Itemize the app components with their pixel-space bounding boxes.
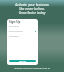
staticText: SIGN UP: [19, 60, 27, 62]
staticText: Full name: [9, 25, 19, 28]
button[interactable]: Password: [9, 35, 36, 40]
staticText: Activate your business like never before…: [15, 3, 49, 15]
button[interactable]: Full name: [9, 25, 36, 30]
button[interactable]: Email address: [9, 30, 36, 35]
staticText: Email address: [9, 30, 23, 33]
button[interactable]: Already have an account? Log in: [14, 66, 50, 69]
button[interactable]: SIGN UP: [9, 60, 36, 62]
staticText: Sign Up: [9, 20, 21, 24]
staticText: Password: [9, 35, 19, 38]
